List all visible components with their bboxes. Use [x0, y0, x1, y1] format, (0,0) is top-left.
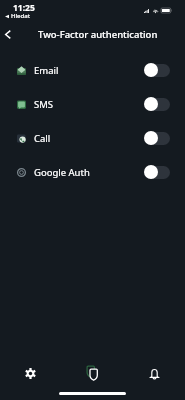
button[interactable]: Back — [0, 22, 16, 46]
staticText: Two-Factor authentication — [38, 28, 158, 41]
button[interactable]: Settings — [0, 359, 61, 387]
button[interactable]: Toggle — [144, 97, 171, 111]
button[interactable]: Email — [0, 53, 185, 87]
button[interactable]: Google Auth — [0, 155, 185, 189]
button[interactable]: Toggle — [144, 131, 171, 145]
staticText: Email — [34, 64, 59, 77]
staticText: Call — [34, 132, 51, 145]
button[interactable]: SMS — [0, 87, 185, 121]
button[interactable]: Call — [0, 121, 185, 155]
button[interactable]: Security — [61, 359, 123, 387]
staticText: Hledat — [11, 12, 31, 20]
staticText: 11:25 — [13, 2, 35, 14]
button[interactable]: Toggle — [144, 165, 171, 179]
button[interactable]: Toggle — [144, 63, 171, 77]
button[interactable]: Notifications — [123, 359, 185, 387]
staticText: SMS — [34, 98, 54, 111]
staticText: Google Auth — [34, 166, 90, 179]
